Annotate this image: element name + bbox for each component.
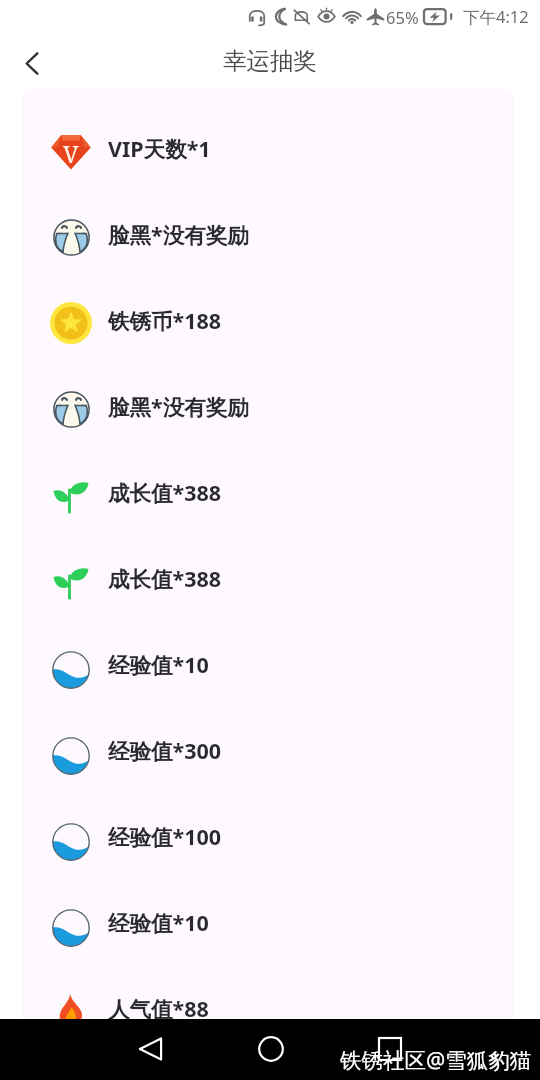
button[interactable]: 成长值*388	[22, 449, 514, 535]
staticText: 成长值*388	[108, 478, 222, 507]
button[interactable]: 人气值*88	[22, 965, 514, 1051]
staticText: 经验值*100	[108, 822, 222, 851]
staticText: 人气值*88	[108, 994, 209, 1023]
staticText: V	[63, 138, 79, 169]
button[interactable]: 脸黑*没有奖励	[22, 191, 514, 277]
button[interactable]: 铁锈币*188	[22, 277, 514, 363]
button[interactable]: 经验值*10	[22, 621, 514, 707]
staticText: 脸黑*没有奖励	[108, 392, 249, 421]
staticText: 铁锈社区@雪狐豹猫	[340, 1045, 532, 1074]
button[interactable]: V	[22, 105, 514, 191]
button[interactable]: 经验值*100	[22, 793, 514, 879]
staticText: 铁锈币*188	[108, 306, 222, 335]
button[interactable]: 脸黑*没有奖励	[22, 363, 514, 449]
staticText: 成长值*388	[108, 564, 222, 593]
staticText: 经验值*10	[108, 908, 209, 937]
button[interactable]: Home	[248, 1026, 294, 1072]
staticText: 脸黑*没有奖励	[108, 220, 249, 249]
staticText: 下午4:12	[463, 5, 529, 28]
staticText: 幸运抽奖	[223, 46, 317, 76]
button[interactable]: Back	[127, 1026, 173, 1072]
staticText: 经验值*10	[108, 650, 209, 679]
staticText: 经验值*300	[108, 736, 222, 765]
button[interactable]: Recents	[367, 1026, 413, 1072]
button[interactable]: 经验值*300	[22, 707, 514, 793]
staticText: VIP天数*1	[108, 134, 211, 163]
button[interactable]: 成长值*388	[22, 535, 514, 621]
staticText: 65%	[386, 6, 419, 28]
button[interactable]: 经验值*10	[22, 879, 514, 965]
button[interactable]: Back	[12, 43, 52, 83]
